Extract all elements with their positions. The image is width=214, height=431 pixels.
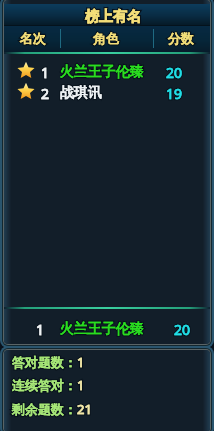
staticText: 20 [174, 320, 191, 339]
staticText: 连续答对： [12, 377, 77, 393]
staticText: 1 [36, 320, 45, 339]
staticText: 战琪讯 [60, 84, 102, 102]
staticText: 连续答对： [12, 377, 77, 393]
staticText: 20 [166, 63, 183, 82]
staticText: 1 [36, 320, 45, 339]
staticText: 1 [77, 353, 85, 371]
staticText: 1 [77, 353, 85, 371]
staticText: 1 [41, 63, 50, 82]
staticText: 2 [41, 84, 50, 103]
button[interactable]: 1 [4, 318, 210, 337]
staticText: 1 [77, 376, 85, 394]
staticText: 剩余题数： [12, 401, 77, 417]
staticText: 1 [36, 320, 45, 339]
staticText: 火兰王子伦臻 [60, 320, 144, 338]
staticText: 2 [41, 84, 50, 103]
staticText: 1 [77, 376, 85, 394]
staticText: 战琪讯 [60, 84, 102, 102]
staticText: 名次 [20, 30, 46, 46]
staticText: 21 [77, 400, 92, 418]
staticText: 20 [166, 63, 183, 82]
staticText: 榜上有名 [85, 8, 141, 26]
staticText: 19 [166, 84, 183, 103]
staticText: 榜上有名 [85, 8, 141, 26]
staticText: 火兰王子伦臻 [60, 63, 144, 81]
staticText: 火兰王子伦臻 [60, 63, 144, 81]
staticText: 1 [41, 63, 50, 82]
staticText: 21 [77, 400, 92, 418]
staticText: 19 [166, 84, 183, 103]
staticText: 20 [174, 320, 191, 339]
staticText: 角色 [93, 30, 119, 46]
staticText: 剩余题数： [12, 401, 77, 417]
staticText: 20 [166, 63, 183, 82]
button[interactable]: Rank star [4, 61, 210, 81]
staticText: 角色 [93, 30, 119, 46]
staticText: 分数 [168, 30, 194, 46]
staticText: 名次 [20, 30, 46, 46]
other: Rank star [17, 82, 35, 100]
staticText: 1 [41, 63, 50, 82]
staticText: 21 [77, 400, 92, 418]
staticText: 答对题数： [12, 354, 77, 370]
staticText: 1 [77, 376, 85, 394]
staticText: 分数 [168, 30, 194, 46]
staticText: 角色 [93, 30, 119, 46]
other: Rank star [17, 61, 35, 79]
staticText: 火兰王子伦臻 [60, 320, 144, 338]
staticText: 答对题数： [12, 354, 77, 370]
staticText: 名次 [20, 30, 46, 46]
staticText: 20 [174, 320, 191, 339]
staticText: 榜上有名 [85, 8, 141, 26]
staticText: 1 [77, 353, 85, 371]
staticText: 剩余题数： [12, 401, 77, 417]
button[interactable]: Rank star [4, 82, 210, 102]
staticText: 答对题数： [12, 354, 77, 370]
staticText: 火兰王子伦臻 [60, 320, 144, 338]
staticText: 19 [166, 84, 183, 103]
staticText: 战琪讯 [60, 84, 102, 102]
staticText: 连续答对： [12, 377, 77, 393]
staticText: 火兰王子伦臻 [60, 63, 144, 81]
staticText: 分数 [168, 30, 194, 46]
staticText: 2 [41, 84, 50, 103]
